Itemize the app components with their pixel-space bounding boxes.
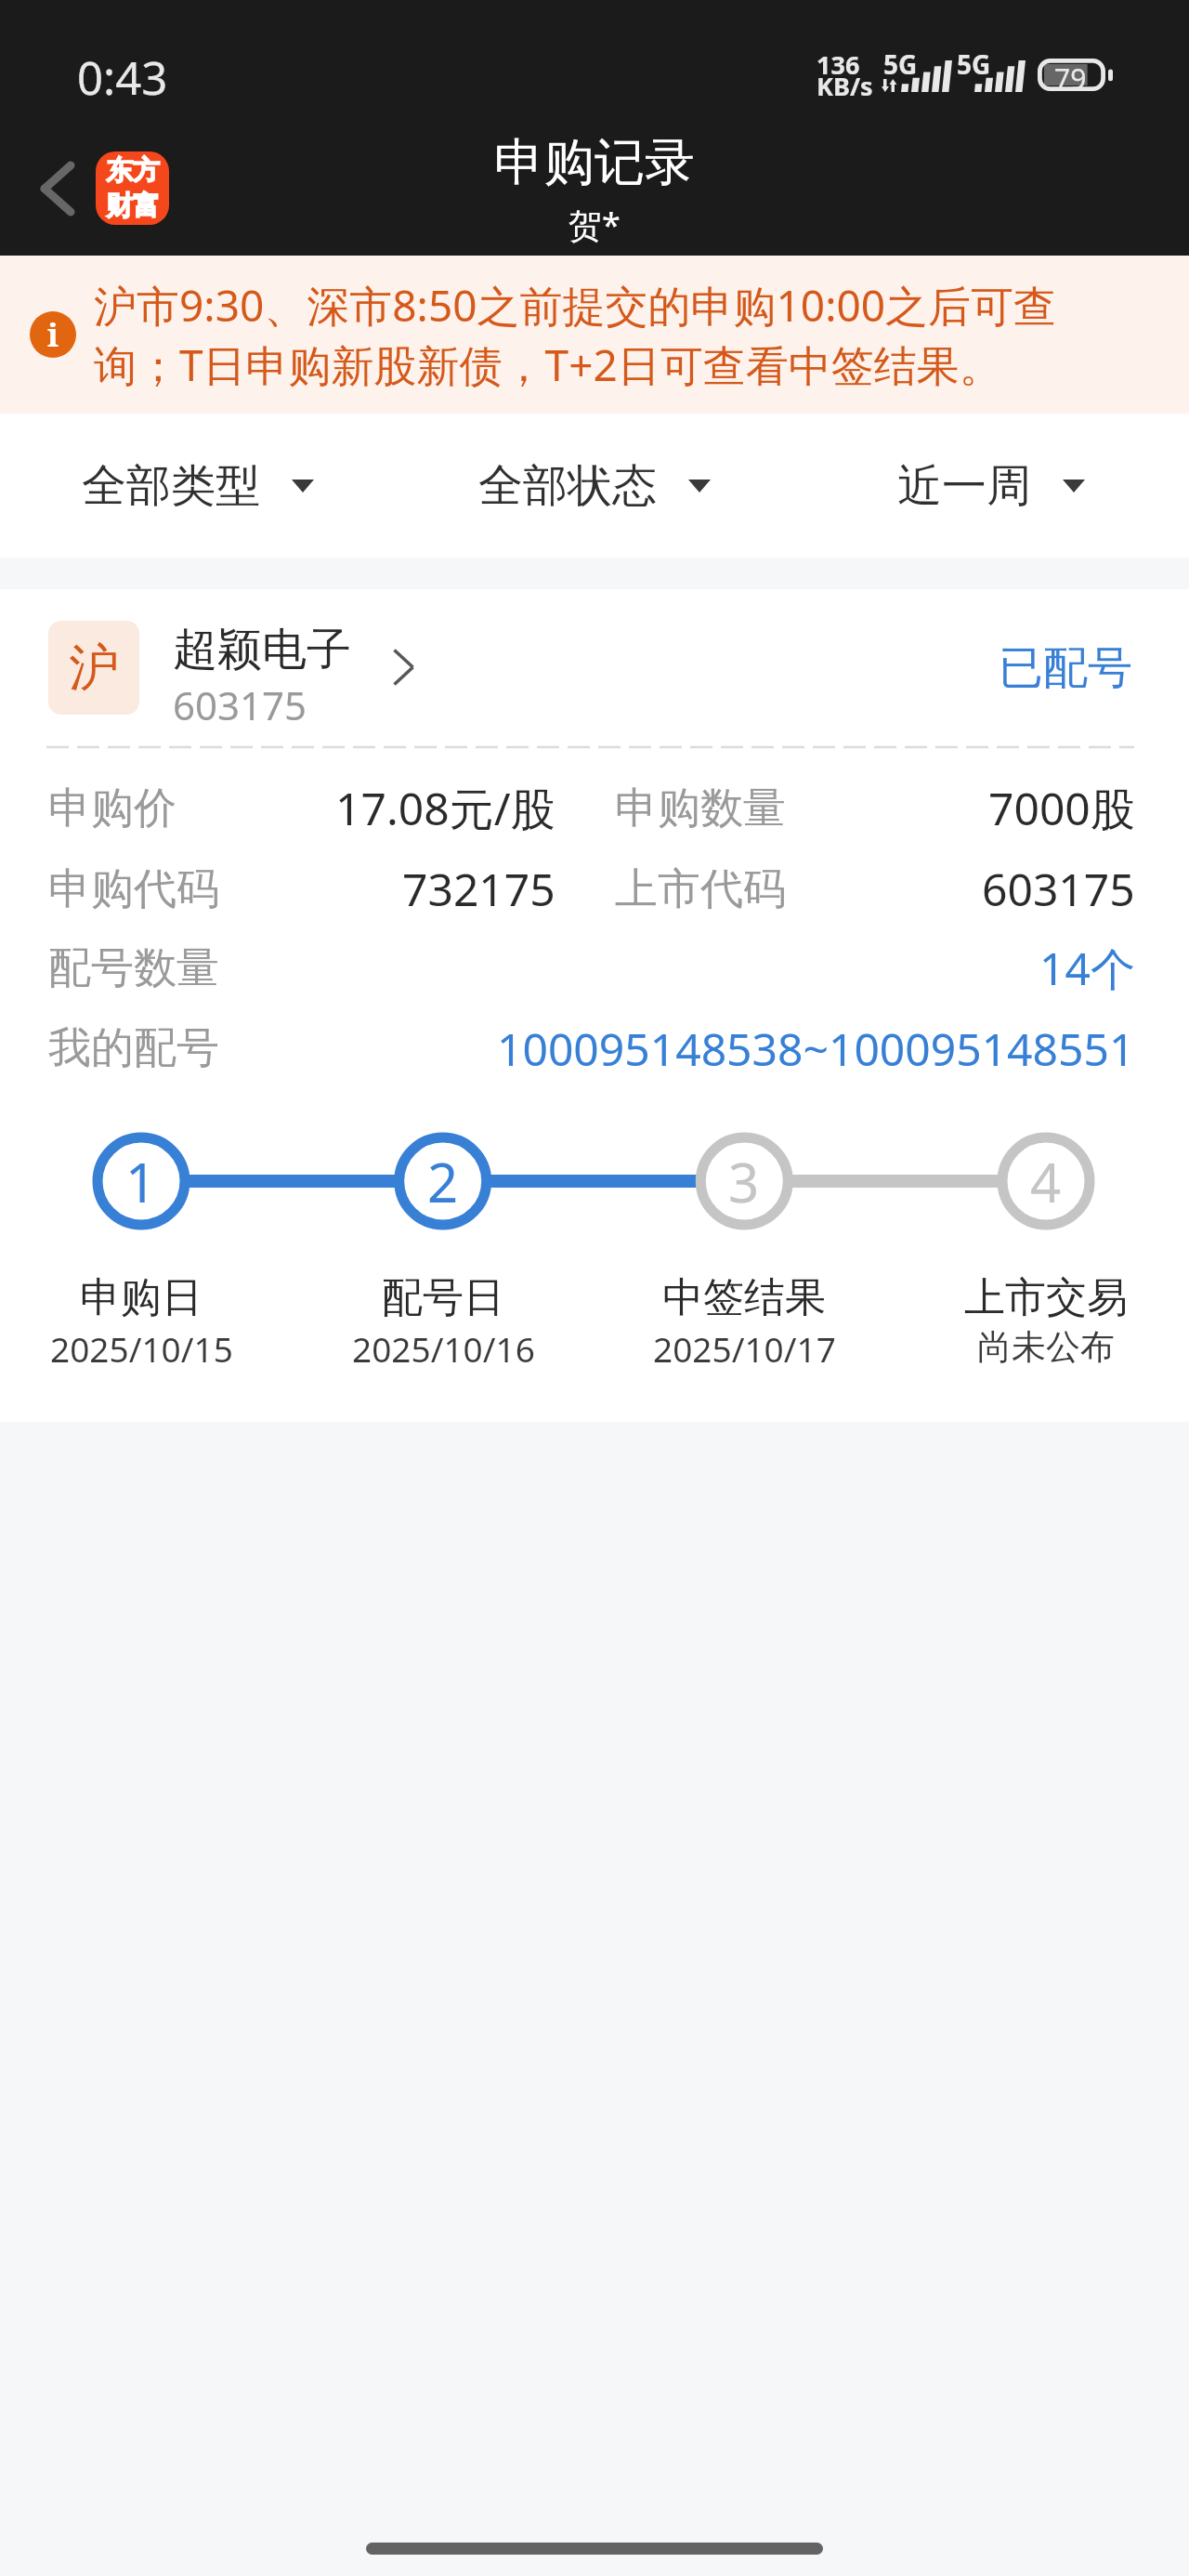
staticText: 2025/10/16: [352, 1325, 535, 1372]
staticText: i: [47, 313, 59, 356]
staticText: 申购记录: [494, 131, 695, 194]
staticText: 7000股: [988, 778, 1135, 839]
staticText: 申购价: [48, 782, 176, 835]
button[interactable]: 超颖电子 603175 已配号: [0, 589, 1189, 745]
staticText: 2025/10/17: [653, 1325, 836, 1372]
staticText: 我的配号: [48, 1021, 219, 1075]
staticText: 17.08元/股: [335, 778, 555, 839]
staticText: 申购日: [80, 1272, 203, 1323]
staticText: 2025/10/15: [50, 1325, 233, 1372]
staticText: 上市代码: [615, 862, 786, 916]
staticText: 603175: [982, 859, 1135, 919]
staticText: 603175: [173, 678, 307, 731]
button[interactable]: 超颖电子 603175 已配号: [0, 589, 1189, 1422]
button[interactable]: 全部状态: [396, 458, 792, 514]
button[interactable]: 近一周: [792, 458, 1189, 514]
staticText: 136 KB/s: [817, 47, 873, 103]
staticText: 2: [427, 1145, 459, 1218]
staticText: 79: [1054, 59, 1087, 92]
staticText: 配号日: [382, 1272, 504, 1323]
staticText: 沪市9:30、深市8:50之前提交的申购10:00之后可查询；T日申购新股新债，…: [94, 276, 1111, 394]
staticText: 上市交易: [964, 1272, 1128, 1323]
button[interactable]: 返回: [19, 150, 97, 228]
staticText: 东方: [106, 153, 160, 188]
staticText: 3: [728, 1145, 760, 1218]
staticText: 沪: [69, 637, 119, 700]
staticText: 0:43: [77, 46, 168, 109]
staticText: 已配号: [999, 640, 1132, 696]
staticText: 中签结果: [662, 1272, 826, 1323]
staticText: 申购数量: [615, 782, 786, 835]
staticText: 5G: [957, 46, 991, 82]
staticText: 申购代码: [48, 862, 219, 916]
staticText: 4: [1030, 1145, 1062, 1218]
staticText: 5G: [883, 46, 918, 82]
staticText: 近一周: [897, 458, 1031, 514]
button[interactable]: 东方财富: [96, 151, 169, 225]
staticText: 尚未公布: [977, 1325, 1115, 1369]
staticText: 14个: [1039, 938, 1135, 999]
staticText: 1: [125, 1145, 157, 1218]
staticText: 全部状态: [478, 458, 657, 514]
staticText: 财富: [106, 189, 160, 223]
staticText: 配号数量: [48, 941, 219, 995]
staticText: 100095148538~100095148551: [497, 1019, 1135, 1079]
staticText: 732175: [402, 859, 555, 919]
staticText: 贺*: [568, 202, 621, 247]
staticText: 全部类型: [82, 458, 260, 514]
button[interactable]: 全部类型: [0, 458, 396, 514]
staticText: 超颖电子: [173, 622, 351, 677]
